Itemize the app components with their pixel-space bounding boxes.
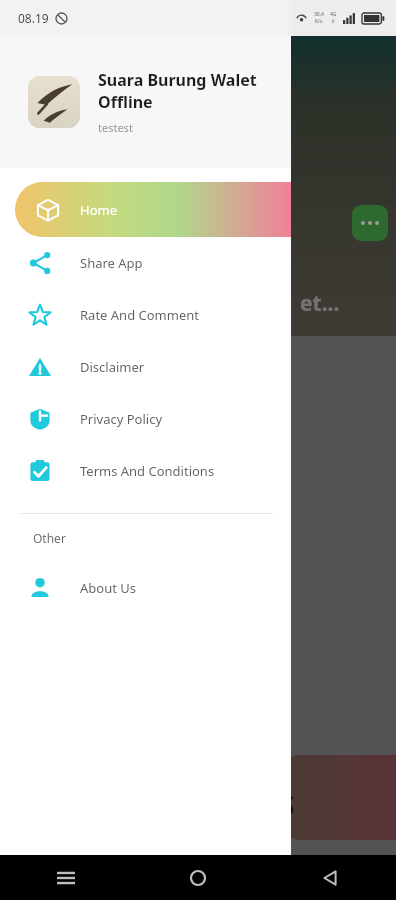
staticText: 4G <box>330 11 337 18</box>
button[interactable]: Rate And Comment <box>0 289 291 341</box>
button[interactable]: Home <box>132 855 264 900</box>
staticText: Privacy Policy <box>80 410 163 428</box>
button[interactable]: Terms And Conditions <box>0 445 291 497</box>
staticText: testest <box>98 120 133 135</box>
staticText: Other <box>33 530 66 546</box>
button[interactable]: Back <box>264 855 396 900</box>
button[interactable]: About Us <box>0 562 291 614</box>
button[interactable]: Disclaimer <box>0 341 291 393</box>
staticText: Disclaimer <box>80 358 145 376</box>
staticText: ıl <box>332 18 335 25</box>
staticText: Terms And Conditions <box>80 462 215 480</box>
staticText: About Us <box>80 579 137 597</box>
button[interactable]: Home <box>15 182 291 237</box>
staticText: Suara Burung Walet Offline <box>98 69 275 113</box>
button[interactable]: Recent apps <box>0 855 132 900</box>
staticText: Rate And Comment <box>80 306 199 324</box>
staticText: et... <box>300 289 340 318</box>
staticText: K/s <box>315 18 323 25</box>
button[interactable]: More options <box>352 205 388 241</box>
staticText: Home <box>80 201 117 219</box>
staticText: 08.19 <box>18 10 49 26</box>
staticText: 30,4 <box>314 11 324 18</box>
staticText: S <box>280 787 295 822</box>
button[interactable]: Share App <box>0 237 291 289</box>
button[interactable]: Privacy Policy <box>0 393 291 445</box>
staticText: Share App <box>80 254 143 272</box>
